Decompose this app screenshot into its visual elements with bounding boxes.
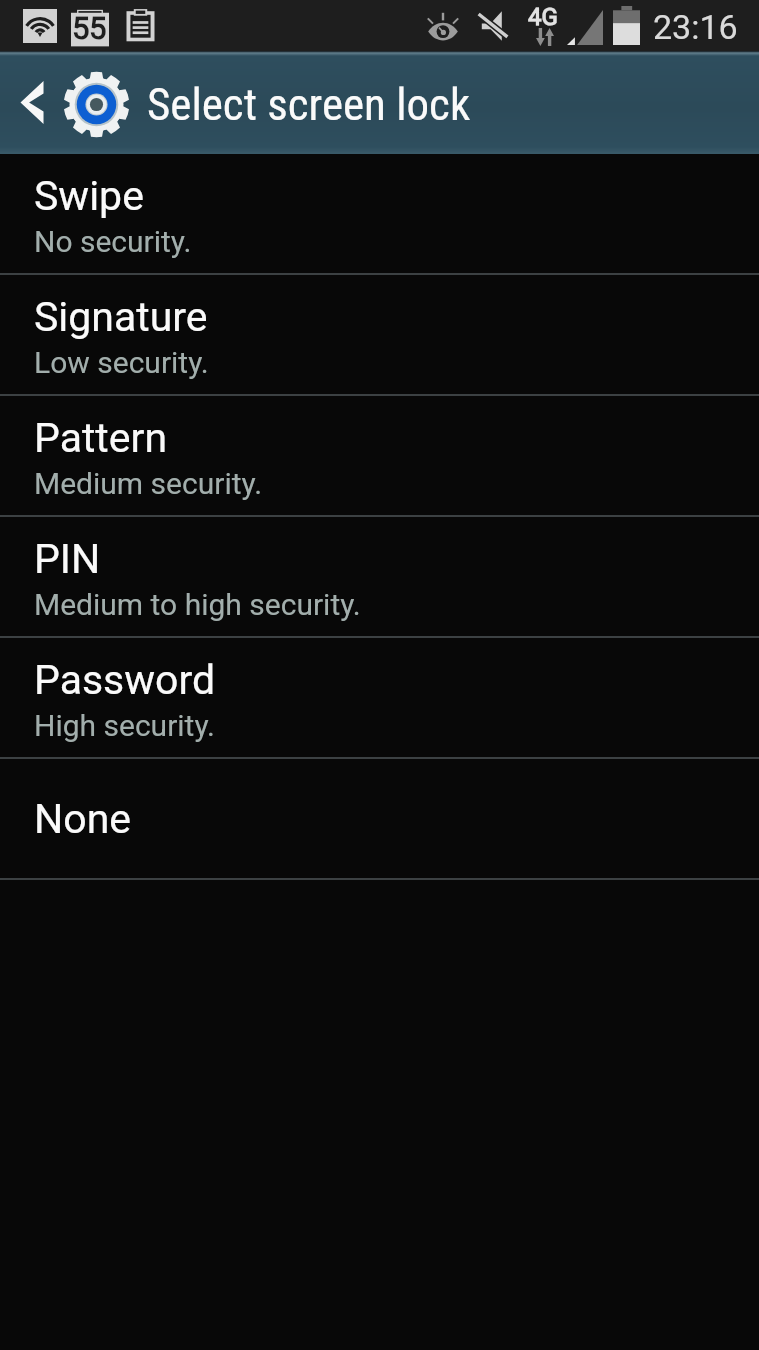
staticText: Medium to high security. bbox=[34, 587, 361, 622]
staticText: Pattern bbox=[34, 414, 168, 462]
button[interactable]: Password bbox=[0, 638, 759, 759]
staticText: 23:16 bbox=[653, 7, 738, 47]
button[interactable]: Pattern bbox=[0, 396, 759, 517]
staticText: 4G bbox=[528, 3, 558, 31]
button[interactable]: None bbox=[0, 759, 759, 880]
button[interactable]: PIN bbox=[0, 517, 759, 638]
button[interactable]: Navigate up bbox=[0, 51, 759, 154]
button[interactable]: Swipe bbox=[0, 154, 759, 275]
staticText: No security. bbox=[34, 224, 192, 259]
staticText: None bbox=[34, 795, 132, 843]
staticText: Low security. bbox=[34, 345, 209, 380]
staticText: Signature bbox=[34, 293, 208, 341]
button[interactable]: Navigate up bbox=[0, 51, 136, 154]
button[interactable]: Signature bbox=[0, 275, 759, 396]
staticText: Password bbox=[34, 656, 216, 704]
staticText: Select screen lock bbox=[147, 78, 471, 131]
staticText: PIN bbox=[34, 535, 101, 583]
staticText: Swipe bbox=[34, 172, 144, 220]
staticText: High security. bbox=[34, 708, 215, 743]
staticText: 55 bbox=[72, 10, 106, 46]
staticText: Medium security. bbox=[34, 466, 263, 501]
